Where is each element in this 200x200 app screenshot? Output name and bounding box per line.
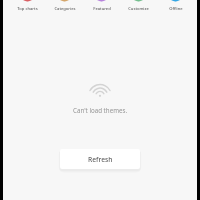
staticText: Top charts [17,6,38,12]
button[interactable]: Customize [120,0,157,14]
staticText: Offline [169,6,183,12]
button[interactable]: Refresh [60,149,140,169]
staticText: Customize [128,6,149,12]
staticText: Featured [93,6,111,12]
button[interactable]: Offline [157,0,194,14]
staticText: Refresh [88,155,113,164]
button[interactable]: Categories [46,0,83,14]
staticText: Can't load themes. [73,106,128,114]
button[interactable]: Top charts [9,0,46,14]
button[interactable]: Featured [83,0,120,14]
other: No connection [88,82,112,96]
staticText: Categories [54,6,76,12]
